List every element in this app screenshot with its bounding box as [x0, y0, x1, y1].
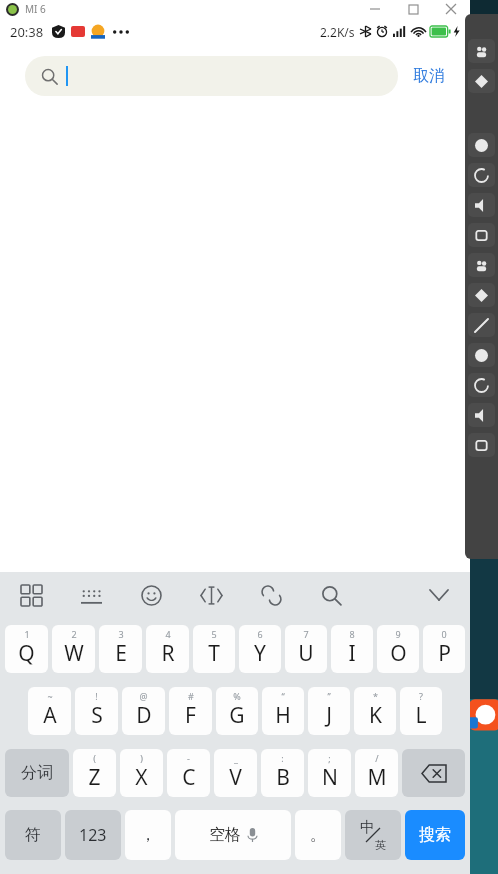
staticText: G	[229, 701, 245, 730]
staticText: Y	[254, 639, 266, 668]
staticText: 符	[25, 825, 41, 845]
button[interactable]: 8	[331, 625, 373, 673]
staticText: /	[375, 752, 379, 764]
staticText: 7	[303, 628, 309, 640]
staticText: ?	[419, 690, 423, 702]
button[interactable]: Back	[468, 403, 495, 427]
staticText: 2	[71, 628, 77, 640]
button[interactable]: Link	[250, 574, 292, 616]
staticText: N	[322, 763, 338, 792]
staticText: C	[182, 763, 196, 792]
staticText: U	[298, 639, 314, 668]
staticText: 123	[79, 824, 107, 846]
button[interactable]: ;	[308, 749, 351, 797]
button[interactable]: Backspace	[402, 749, 465, 797]
button[interactable]: Resize	[468, 69, 495, 93]
staticText: “	[281, 690, 285, 702]
button[interactable]: *	[354, 687, 396, 735]
staticText: 20:38	[10, 23, 44, 41]
button[interactable]: !	[75, 687, 118, 735]
staticText: ，	[140, 825, 156, 845]
staticText: A	[43, 701, 57, 730]
button[interactable]: 符	[5, 810, 61, 860]
staticText: 英	[375, 838, 386, 852]
button[interactable]: 123	[65, 810, 121, 860]
staticText: 搜索	[419, 825, 451, 845]
button[interactable]: 3	[99, 625, 142, 673]
button[interactable]: (	[73, 749, 116, 797]
staticText: 1	[24, 628, 30, 640]
button[interactable]: 9	[377, 625, 419, 673]
staticText: ~	[47, 690, 53, 702]
staticText: I	[348, 639, 356, 668]
button[interactable]: :	[261, 749, 304, 797]
staticText: 3	[118, 628, 124, 640]
button[interactable]: Chinese English toggle	[345, 810, 401, 860]
button[interactable]: “	[262, 687, 304, 735]
button[interactable]: 6	[239, 625, 281, 673]
staticText: P	[438, 639, 451, 668]
staticText: #	[188, 690, 194, 702]
button[interactable]: Apps	[10, 574, 52, 616]
button[interactable]: 2	[52, 625, 95, 673]
staticText: B	[276, 763, 290, 792]
button[interactable]: 0	[423, 625, 465, 673]
button[interactable]: _	[214, 749, 257, 797]
button[interactable]: Home	[468, 373, 495, 397]
staticText: L	[415, 701, 427, 730]
button[interactable]: Keyboard layout	[70, 574, 112, 616]
button[interactable]: 取消	[398, 45, 460, 107]
button[interactable]: Search	[310, 574, 352, 616]
button[interactable]: 7	[285, 625, 327, 673]
button[interactable]: #	[169, 687, 212, 735]
button[interactable]: Emoji	[130, 574, 172, 616]
button[interactable]: -	[167, 749, 210, 797]
staticText: Q	[18, 639, 35, 668]
button[interactable]: 。	[295, 810, 341, 860]
button[interactable]: /	[355, 749, 398, 797]
button[interactable]	[25, 56, 398, 96]
button[interactable]: Hide keyboard	[418, 574, 460, 616]
button[interactable]: More	[468, 433, 495, 457]
staticText: H	[275, 701, 291, 730]
button[interactable]: @	[122, 687, 165, 735]
button[interactable]: ，	[125, 810, 171, 860]
staticText: %	[233, 690, 241, 702]
button[interactable]: ”	[308, 687, 350, 735]
button[interactable]: Record	[468, 163, 495, 187]
button[interactable]: Minimise	[356, 0, 394, 18]
staticText: 4	[165, 628, 171, 640]
button[interactable]: Screenshot	[468, 133, 495, 157]
staticText: E	[115, 639, 127, 668]
staticText: S	[91, 701, 103, 730]
button[interactable]: ~	[28, 687, 71, 735]
staticText: M	[367, 763, 387, 792]
button[interactable]: ?	[400, 687, 442, 735]
staticText: K	[369, 701, 382, 730]
staticText: *	[373, 690, 378, 702]
button[interactable]: Rotate	[468, 223, 495, 247]
button[interactable]: )	[120, 749, 163, 797]
staticText: V	[229, 763, 242, 792]
staticText: ;	[328, 752, 331, 764]
button[interactable]: Eye	[468, 193, 495, 217]
button[interactable]: 4	[146, 625, 189, 673]
button[interactable]: Volume up	[468, 253, 495, 277]
button[interactable]: 搜索	[405, 810, 465, 860]
button[interactable]: Volume down	[468, 283, 495, 307]
button[interactable]: %	[216, 687, 258, 735]
button[interactable]: Multi window	[468, 39, 495, 63]
button[interactable]: 分词	[5, 749, 69, 797]
button[interactable]: Copy	[468, 313, 495, 337]
button[interactable]: 5	[193, 625, 235, 673]
button[interactable]: Clipboard text	[190, 574, 232, 616]
button[interactable]: 1	[5, 625, 48, 673]
staticText: !	[95, 690, 98, 702]
button[interactable]: 空格	[175, 810, 291, 860]
button[interactable]: Maximise	[394, 0, 432, 18]
staticText: 取消	[413, 66, 445, 86]
button[interactable]: Close	[432, 0, 470, 18]
staticText: X	[135, 763, 148, 792]
button[interactable]: Frame	[468, 343, 495, 367]
staticText: 8	[349, 628, 355, 640]
